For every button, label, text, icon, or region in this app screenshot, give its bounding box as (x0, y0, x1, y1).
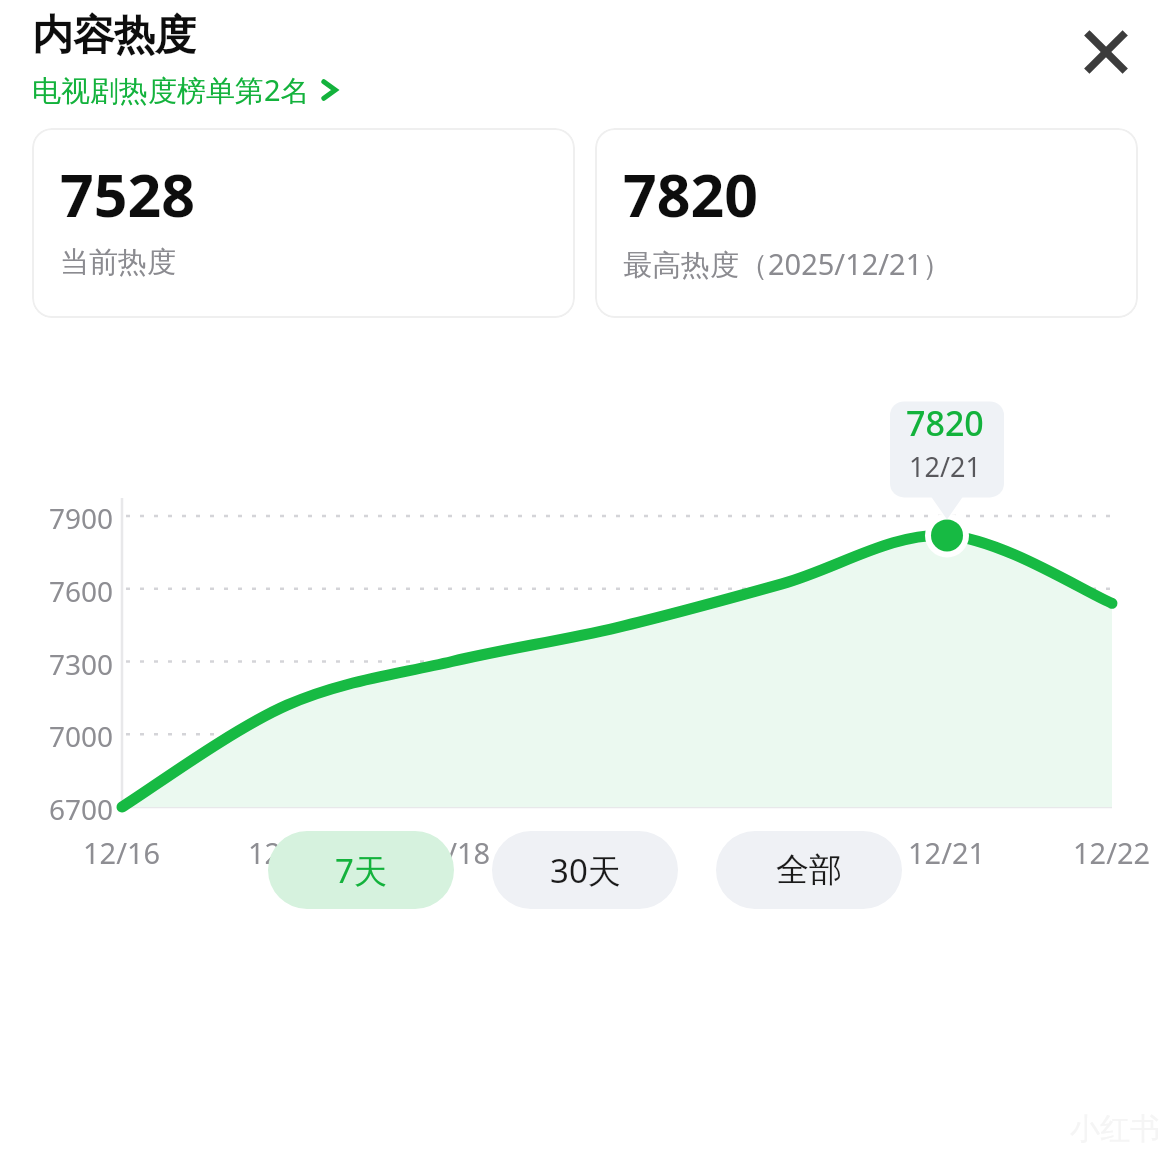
staticText: 当前热度 (60, 244, 176, 281)
staticText: 最高热度（2025/12/21） (623, 244, 952, 284)
staticText: 7天 (335, 848, 387, 893)
staticText: 6700 (49, 790, 114, 828)
staticText: 12/22 (1073, 833, 1151, 872)
staticText: 12/21 (909, 448, 981, 485)
staticText: 小红书 (1070, 1110, 1160, 1148)
staticText: 7300 (49, 645, 114, 683)
staticText: 12/20 (743, 833, 821, 872)
staticText: 30天 (550, 848, 621, 893)
button[interactable]: 电视剧热度榜单第2名 (32, 68, 349, 112)
staticText: 12/17 (248, 833, 326, 872)
staticText: 7900 (49, 499, 114, 537)
staticText: 7600 (49, 572, 114, 610)
button[interactable]: 30天 (492, 831, 678, 909)
staticText: 7820 (623, 154, 758, 234)
staticText: 电视剧热度榜单第2名 (32, 70, 310, 110)
staticText: 12/21 (908, 833, 986, 872)
staticText: 全部 (776, 849, 842, 891)
staticText: 7820 (906, 400, 984, 446)
button[interactable]: 7528 (32, 128, 575, 318)
button[interactable]: 全部 (716, 831, 902, 909)
button[interactable]: Close (1070, 16, 1142, 88)
staticText: 12/16 (83, 833, 161, 872)
staticText: 7000 (49, 717, 114, 755)
button[interactable]: 7天 (268, 831, 454, 909)
staticText: 12/18 (413, 833, 491, 872)
staticText: 内容热度 (32, 10, 196, 62)
button[interactable]: 7820 (595, 128, 1138, 318)
staticText: 12/19 (578, 833, 656, 872)
staticText: 7528 (60, 154, 195, 234)
